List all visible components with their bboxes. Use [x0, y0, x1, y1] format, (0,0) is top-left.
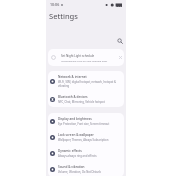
staticText: Wi-Fi, SIM, digital hotspot, network, ho…: [58, 80, 116, 88]
button[interactable]: Bluetooth & devices: [48, 91, 124, 107]
staticText: Bluetooth & devices: [58, 95, 88, 99]
staticText: Always-always ring and effects: [58, 154, 97, 158]
staticText: Sound & vibration: [58, 165, 85, 169]
staticText: Settings: [49, 11, 78, 21]
button[interactable]: Sound & vibration: [48, 161, 124, 176]
staticText: Volume, Vibration, Do Not Disturb: [58, 170, 101, 174]
staticText: Eye Protection, Font size, Screen timeou…: [58, 122, 110, 126]
button[interactable]: Lock screen & wallpaper: [48, 129, 124, 145]
button[interactable]: Display and brightness: [48, 113, 124, 129]
staticText: Wallpaper, Themes, Always Subscription: [58, 138, 109, 142]
staticText: Display and brightness: [58, 117, 92, 121]
staticText: Set Night Light schedule: [61, 54, 95, 58]
staticText: Lock screen & wallpaper: [58, 133, 94, 137]
button[interactable]: Search settings: [114, 35, 125, 46]
staticText: NFC, Chat, Mirroring, Vehicle hotspot: [58, 100, 105, 104]
staticText: 10:06: [50, 2, 60, 7]
staticText: Dynamic effects: [58, 149, 82, 153]
button[interactable]: Network & internet: [48, 71, 124, 91]
staticText: Automatically turn on your evening light: [61, 59, 108, 62]
button[interactable]: Dynamic effects: [48, 145, 124, 161]
button[interactable]: Set Night Light schedule: [48, 49, 124, 66]
staticText: Network & internet: [58, 75, 87, 79]
